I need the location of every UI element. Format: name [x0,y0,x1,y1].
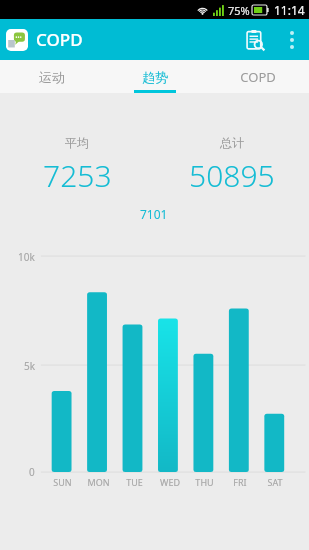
staticText: 7101 [140,206,168,222]
staticText: SUN [53,476,72,488]
staticText: 总计 [220,135,244,150]
staticText: 10k [18,250,35,264]
staticText: 趋势 [142,69,168,85]
staticText: 运动 [39,69,65,85]
staticText: 11:14 [274,2,305,18]
button[interactable]: More options [277,19,307,60]
staticText: FRI [233,476,247,488]
staticText: TUE [126,476,143,488]
staticText: 0 [29,465,35,479]
button[interactable]: 平均 [0,135,154,196]
staticText: SAT [267,476,283,488]
staticText: 75% [228,3,250,18]
staticText: COPD [36,28,83,51]
staticText: THU [195,476,214,488]
staticText: 平均 [65,135,89,150]
button[interactable]: COPD [206,60,309,93]
staticText: MON [87,476,110,488]
staticText: COPD [240,68,276,86]
button[interactable]: 总计 [154,135,309,196]
button[interactable]: Records search [233,19,277,60]
button[interactable]: 趋势 [103,60,206,93]
staticText: 50895 [189,155,275,196]
staticText: WED [160,476,180,488]
staticText: 7253 [43,155,112,196]
staticText: 5k [24,359,36,373]
button[interactable]: 运动 [0,60,103,93]
